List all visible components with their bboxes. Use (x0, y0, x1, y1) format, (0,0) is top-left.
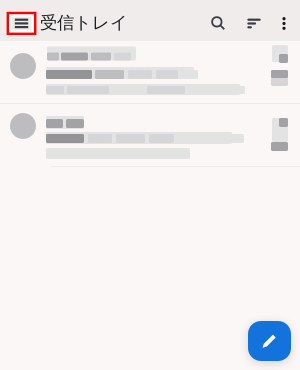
button[interactable]: Search (0, 0, 232, 37)
button[interactable]: Sort (0, 0, 267, 36)
staticText: 受信トレイ (40, 12, 128, 33)
button[interactable]: Message 2 (0, 104, 300, 166)
button[interactable]: Menu (0, 0, 36, 35)
button[interactable]: Compose (248, 321, 291, 361)
button[interactable]: More options (0, 0, 296, 36)
button[interactable]: Message 1 (0, 41, 300, 103)
